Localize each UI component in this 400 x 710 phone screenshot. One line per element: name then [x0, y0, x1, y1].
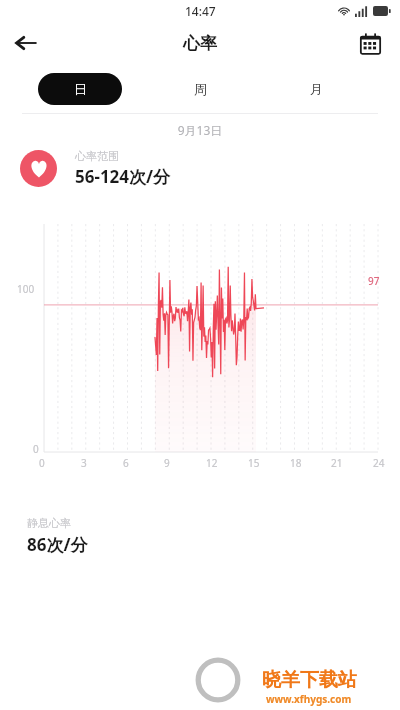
staticText: 0 [33, 442, 39, 456]
staticText: 100 [17, 282, 35, 296]
staticText: 86次/分 [27, 533, 88, 556]
staticText: 静息心率 [27, 516, 71, 530]
staticText: 15 [248, 456, 260, 470]
staticText: 心率 [183, 33, 217, 54]
staticText: 24 [373, 456, 385, 470]
staticText: 9月13日 [0, 122, 400, 138]
staticText: 晓羊下载站 [262, 668, 357, 692]
staticText: www.xfhygs.com [266, 692, 352, 706]
staticText: 18 [290, 456, 302, 470]
staticText: 12 [206, 456, 218, 470]
staticText: 月 [310, 81, 323, 97]
staticText: 0 [39, 456, 45, 470]
staticText: 9 [164, 456, 170, 470]
button[interactable]: 日 [38, 73, 122, 105]
button[interactable]: Back [8, 25, 44, 61]
staticText: 97 [368, 274, 380, 288]
button[interactable]: 周 [160, 73, 240, 105]
staticText: 周 [194, 81, 207, 97]
staticText: 56-124次/分 [75, 165, 171, 188]
staticText: 日 [74, 81, 87, 97]
staticText: 3 [81, 456, 87, 470]
staticText: 6 [123, 456, 129, 470]
button[interactable]: Calendar [352, 25, 388, 61]
staticText: 心率范围 [75, 149, 119, 163]
staticText: 21 [331, 456, 343, 470]
button[interactable]: 月 [276, 73, 356, 105]
staticText: 14:47 [185, 3, 216, 19]
